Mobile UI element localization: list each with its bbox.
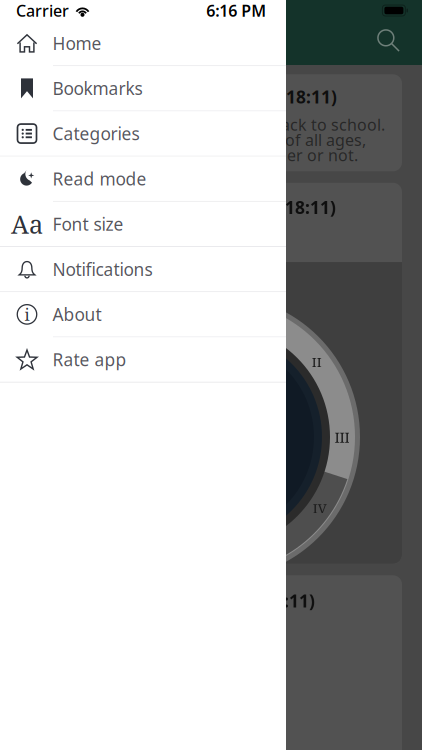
staticText: Font size	[52, 212, 123, 235]
staticText: Notifications	[52, 258, 152, 281]
button[interactable]: Read mode	[0, 157, 286, 201]
staticText: Categories	[52, 122, 139, 145]
button[interactable]: Bookmarks	[0, 66, 286, 111]
button[interactable]: Back to school is here (06/23 18:11)	[20, 74, 402, 171]
staticText: III	[334, 427, 349, 447]
staticText: About	[52, 303, 101, 326]
staticText: A closer look at the new pro	[34, 227, 245, 248]
staticText: ages, and all their families, whether or…	[34, 144, 358, 165]
staticText: Bookmarks	[52, 77, 142, 100]
staticText: II	[312, 353, 322, 371]
button[interactable]: i	[0, 292, 286, 337]
staticText: Read mode	[52, 167, 146, 190]
button[interactable]: A new watch released (06/23 18:11)	[20, 183, 402, 564]
staticText: IV	[313, 499, 327, 517]
staticText: Home	[52, 32, 101, 55]
staticText: It is again the time for us to go back t…	[34, 114, 385, 135]
button[interactable]: Home	[0, 21, 286, 65]
staticText: The great outdoors (06/23 18:11)	[34, 589, 315, 612]
staticText: i	[24, 303, 29, 325]
staticText: Rate app	[52, 348, 126, 371]
staticText: Carrier	[16, 0, 69, 21]
button[interactable]: Search	[377, 29, 422, 65]
button[interactable]: Categories	[0, 111, 286, 156]
button[interactable]: Rate app	[0, 337, 286, 382]
staticText: A new watch released (06/23 18:11)	[34, 196, 336, 219]
button[interactable]: Notifications	[0, 247, 286, 291]
button[interactable]: The great outdoors (06/23 18:11)	[20, 575, 402, 750]
staticText: Back to school is here (06/23 18:11)	[34, 85, 337, 108]
staticText: 6:16 PM	[206, 0, 266, 21]
staticText: Aa	[11, 207, 43, 241]
staticText: Students, parents and the adults of all …	[34, 129, 366, 150]
button[interactable]: Aa	[0, 202, 286, 246]
